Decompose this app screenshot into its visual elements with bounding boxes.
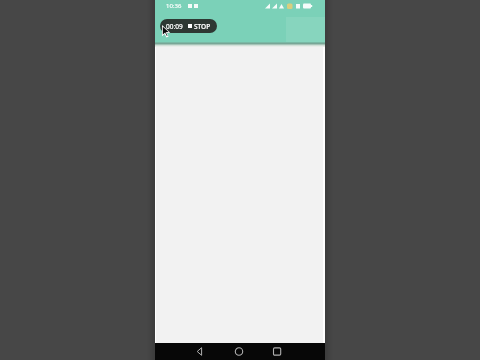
staticText: STOP (194, 22, 211, 31)
staticText: 10:36 (166, 2, 182, 10)
button[interactable]: 00:09 (166, 19, 211, 33)
button[interactable] (155, 343, 211, 360)
button[interactable] (268, 343, 325, 360)
staticText: 00:09 (166, 22, 183, 31)
button[interactable] (211, 343, 268, 360)
